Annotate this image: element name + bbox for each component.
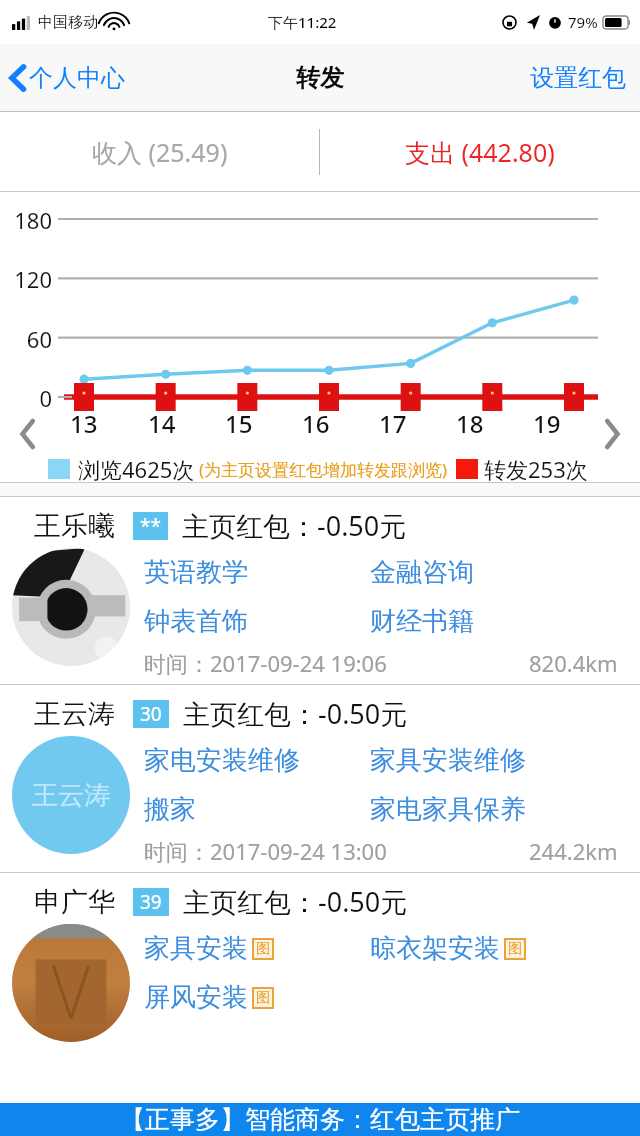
staticText: 英语教学: [144, 556, 248, 589]
staticText: 个人中心: [29, 63, 125, 93]
staticText: 120: [0, 264, 52, 294]
staticText: 图: [508, 940, 522, 958]
staticText: 0: [0, 383, 52, 413]
staticText: 30: [140, 701, 162, 727]
staticText: 时间：2017-09-24 19:06: [144, 648, 387, 678]
button[interactable]: 王云涛: [0, 685, 640, 872]
staticText: 王云涛: [34, 697, 115, 731]
staticText: 79%: [568, 12, 598, 32]
staticText: 主页红包：-0.50元: [183, 883, 408, 920]
button[interactable]: 设置红包: [516, 63, 640, 93]
staticText: 转发253次: [484, 454, 588, 484]
staticText: 14: [148, 407, 176, 440]
staticText: 【正事多】智能商务：红包主页推广: [120, 1104, 520, 1135]
staticText: 王乐曦: [34, 509, 115, 543]
button[interactable]: Previous: [6, 412, 50, 456]
staticText: 图: [256, 989, 270, 1007]
staticText: 13: [70, 407, 98, 440]
staticText: 主页红包：-0.50元: [183, 695, 408, 732]
staticText: 图: [256, 940, 270, 958]
staticText: 主页红包：-0.50元: [182, 507, 407, 544]
staticText: (为主页设置红包增加转发跟浏览): [199, 458, 448, 481]
staticText: 转发: [296, 63, 344, 93]
staticText: 收入 (25.49): [92, 135, 228, 169]
staticText: 180: [0, 205, 52, 235]
staticText: 财经书籍: [370, 605, 474, 638]
staticText: 搬家: [144, 793, 196, 826]
staticText: 18: [456, 407, 484, 440]
staticText: 820.4km: [529, 648, 618, 678]
staticText: 时间：2017-09-24 13:00: [144, 836, 387, 866]
staticText: 申广华: [34, 885, 115, 919]
staticText: 金融咨询: [370, 556, 474, 589]
staticText: 支出 (442.80): [405, 135, 555, 169]
staticText: 下午11:22: [268, 12, 337, 32]
staticText: 家具安装维修: [370, 744, 526, 777]
button[interactable]: Next: [590, 412, 634, 456]
staticText: 钟表首饰: [144, 605, 248, 638]
staticText: 浏览4625次: [78, 454, 195, 484]
staticText: 晾衣架安装: [370, 932, 500, 965]
staticText: 16: [302, 407, 330, 440]
staticText: 家电安装维修: [144, 744, 300, 777]
staticText: 家具安装: [144, 932, 248, 965]
staticText: 244.2km: [529, 836, 618, 866]
button[interactable]: 个人中心: [0, 63, 135, 93]
staticText: 60: [0, 324, 52, 354]
staticText: 39: [140, 889, 162, 915]
staticText: 19: [533, 407, 561, 440]
staticText: 家电家具保养: [370, 793, 526, 826]
staticText: **: [140, 513, 161, 539]
button[interactable]: 收入 (25.49): [0, 112, 319, 192]
staticText: 设置红包: [530, 63, 626, 93]
button[interactable]: 王乐曦: [0, 497, 640, 684]
button[interactable]: 支出 (442.80): [320, 112, 640, 192]
button[interactable]: 【正事多】智能商务：红包主页推广: [0, 1103, 640, 1136]
staticText: 15: [225, 407, 253, 440]
staticText: 17: [379, 407, 407, 440]
staticText: 王云涛: [32, 779, 110, 812]
staticText: 中国移动: [38, 13, 98, 32]
staticText: 屏风安装: [144, 981, 248, 1014]
button[interactable]: 申广华: [0, 873, 640, 1060]
